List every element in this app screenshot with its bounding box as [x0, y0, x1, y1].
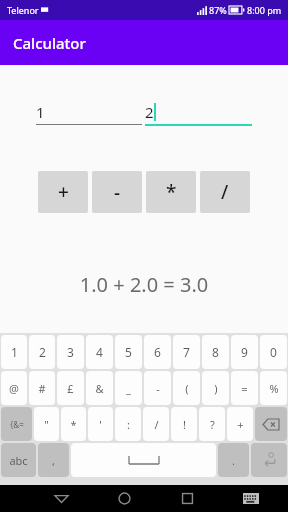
staticText: @	[9, 381, 19, 396]
staticText: #	[38, 381, 46, 396]
button[interactable]: &	[86, 371, 113, 405]
button[interactable]: 7	[173, 335, 200, 369]
staticText: 8:00 pm	[247, 4, 282, 16]
button[interactable]: '	[88, 407, 113, 441]
staticText: 1.0 + 2.0 = 3.0	[0, 271, 288, 298]
button[interactable]: -	[92, 171, 142, 213]
staticText: '	[99, 417, 102, 432]
button[interactable]: :	[115, 407, 141, 441]
staticText: /	[154, 417, 159, 432]
staticText: 9	[241, 344, 248, 360]
staticText: :	[127, 417, 130, 432]
staticText: )	[214, 381, 218, 396]
button[interactable]: ,	[38, 443, 69, 477]
staticText: 1	[36, 102, 45, 122]
staticText: Calculator	[13, 33, 86, 53]
button[interactable]: +	[38, 171, 88, 213]
button[interactable]: 8	[202, 335, 229, 369]
staticText: {&=	[10, 419, 24, 430]
button[interactable]: 1	[1, 335, 27, 369]
button[interactable]: +	[227, 407, 253, 441]
button[interactable]: @	[1, 371, 27, 405]
button[interactable]: *	[146, 171, 196, 213]
button[interactable]: 3	[57, 335, 84, 369]
staticText: 4	[96, 344, 103, 360]
staticText: !	[183, 417, 186, 432]
button[interactable]: -	[144, 371, 171, 405]
staticText: ,	[52, 453, 55, 468]
staticText: 5	[125, 344, 132, 360]
staticText: abc	[9, 453, 28, 468]
staticText: £	[67, 381, 74, 396]
staticText: 3	[67, 344, 74, 360]
staticText: _	[126, 381, 131, 396]
staticText: -	[114, 179, 121, 205]
staticText: 87%	[209, 4, 227, 16]
staticText: 2	[145, 102, 154, 122]
button[interactable]: .	[218, 443, 249, 477]
button[interactable]: {&=	[1, 407, 32, 441]
button[interactable]: "	[34, 407, 59, 441]
button[interactable]: abc	[1, 443, 36, 477]
button[interactable]: Home	[93, 485, 156, 512]
staticText: &	[95, 381, 104, 396]
staticText: %	[269, 381, 279, 396]
button[interactable]: )	[202, 371, 229, 405]
button[interactable]: 2	[145, 100, 252, 126]
staticText: ?	[210, 417, 215, 432]
staticText: 2	[39, 344, 46, 360]
button[interactable]: /	[200, 171, 250, 213]
staticText: 7	[183, 344, 190, 360]
staticText: 1	[11, 344, 18, 360]
staticText: *	[166, 179, 177, 205]
button[interactable]: 1	[36, 100, 142, 125]
staticText: 6	[154, 344, 161, 360]
staticText: *	[70, 417, 77, 432]
button[interactable]: Backspace	[255, 407, 287, 441]
button[interactable]: 4	[86, 335, 113, 369]
staticText: (	[185, 381, 189, 396]
button[interactable]: Switch keyboard	[219, 485, 282, 512]
staticText: 8	[212, 344, 219, 360]
button[interactable]: !	[171, 407, 197, 441]
staticText: Telenor	[7, 4, 39, 16]
button[interactable]: =	[231, 371, 258, 405]
staticText: -	[156, 381, 160, 396]
button[interactable]: 0	[260, 335, 287, 369]
button[interactable]: Recents	[156, 485, 219, 512]
button[interactable]: 6	[144, 335, 171, 369]
button[interactable]: Back	[30, 485, 93, 512]
button[interactable]: 5	[115, 335, 142, 369]
staticText: /	[221, 179, 229, 205]
button[interactable]: Enter	[251, 443, 287, 477]
button[interactable]: %	[260, 371, 287, 405]
staticText: .	[232, 453, 235, 468]
button[interactable]: (	[173, 371, 200, 405]
staticText: =	[241, 381, 248, 396]
button[interactable]: _	[115, 371, 142, 405]
button[interactable]: 9	[231, 335, 258, 369]
button[interactable]: £	[57, 371, 84, 405]
staticText: +	[237, 417, 244, 432]
button[interactable]: 2	[29, 335, 55, 369]
staticText: "	[44, 417, 49, 432]
staticText: +	[58, 179, 69, 205]
button[interactable]: *	[61, 407, 86, 441]
staticText: 0	[270, 344, 277, 360]
button[interactable]: ?	[199, 407, 225, 441]
button[interactable]: Space	[71, 443, 216, 477]
button[interactable]: Calculator	[0, 20, 288, 65]
button[interactable]: /	[143, 407, 169, 441]
button[interactable]: #	[29, 371, 55, 405]
